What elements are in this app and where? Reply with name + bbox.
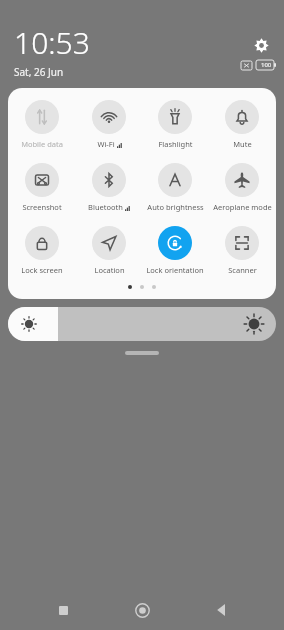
staticText: 10:53 [14, 22, 90, 63]
staticText: Wi-Fi [97, 139, 115, 149]
staticText: 100 [261, 61, 272, 69]
staticText: Scanner [228, 265, 257, 275]
button[interactable]: Recents [46, 593, 80, 627]
button[interactable]: Wi-Fi [76, 98, 142, 151]
button[interactable]: Lock screen [9, 224, 75, 277]
button[interactable]: Auto brightness [142, 161, 208, 214]
staticText: Lock screen [21, 265, 63, 275]
button[interactable]: Bluetooth [76, 161, 142, 214]
staticText: Aeroplane mode [213, 202, 272, 212]
button[interactable]: Lock orientation [142, 224, 208, 277]
button[interactable]: Home [125, 593, 159, 627]
staticText: Auto brightness [147, 202, 204, 212]
staticText: Mute [233, 139, 252, 149]
staticText: Flashlight [158, 139, 193, 149]
staticText: Location [94, 265, 125, 275]
staticText: Sat, 26 Jun [14, 65, 64, 79]
button[interactable]: Settings [248, 32, 274, 58]
button[interactable]: Mobile data [9, 98, 75, 151]
button[interactable]: Back [205, 593, 239, 627]
button[interactable]: Aeroplane mode [209, 161, 275, 214]
button[interactable]: Scanner [209, 224, 275, 277]
button[interactable]: Mute [209, 98, 275, 151]
staticText: Bluetooth [88, 202, 123, 212]
button[interactable]: Location [76, 224, 142, 277]
button[interactable]: Brightness [8, 307, 276, 341]
button[interactable]: Flashlight [142, 98, 208, 151]
staticText: Mobile data [21, 139, 63, 149]
button[interactable]: Screenshot [9, 161, 75, 214]
staticText: Screenshot [22, 202, 62, 212]
staticText: Lock orientation [146, 265, 204, 275]
